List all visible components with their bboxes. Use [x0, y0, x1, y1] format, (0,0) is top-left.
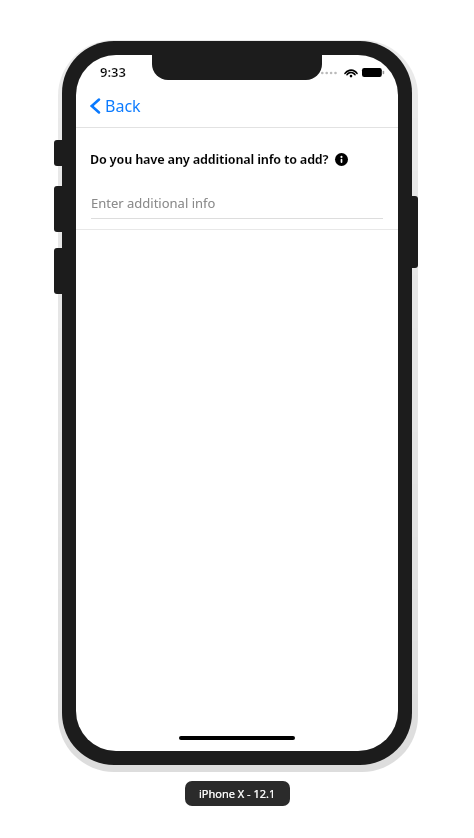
button[interactable]: More information [335, 153, 348, 166]
staticText: Back [105, 95, 141, 117]
staticText: Enter additional info [91, 194, 216, 212]
button[interactable]: Back [86, 89, 145, 123]
staticText: Do you have any additional info to add? [90, 151, 329, 168]
staticText: iPhone X - 12.1 [199, 786, 276, 801]
button[interactable]: Enter additional info [91, 194, 383, 219]
staticText: 9:33 [100, 63, 126, 81]
